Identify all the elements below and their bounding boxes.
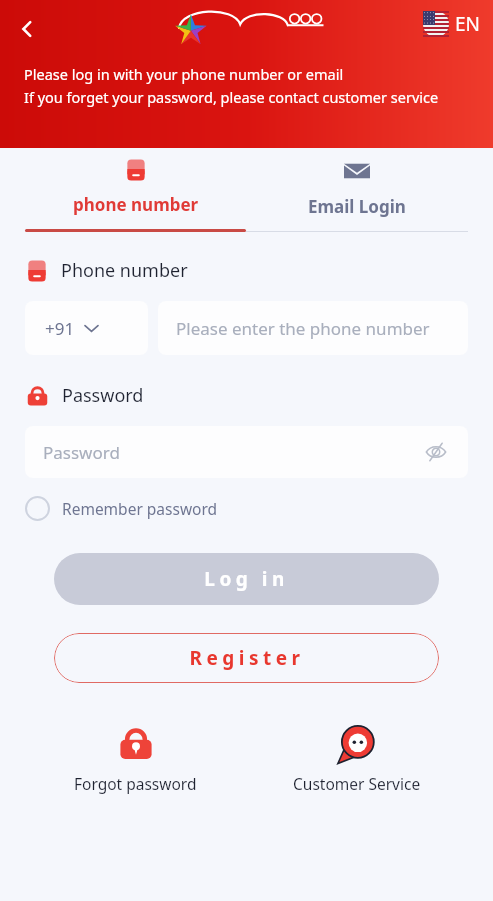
staticText: Phone number [61, 258, 188, 283]
button[interactable]: Show password [422, 438, 450, 466]
staticText: Password [43, 441, 120, 464]
button[interactable]: +91 [25, 301, 148, 355]
button[interactable]: Please enter the phone number [158, 301, 468, 355]
button[interactable]: Forgot password [25, 723, 246, 794]
staticText: Please log in with your phone number or … [24, 64, 344, 84]
staticText: Password [62, 383, 144, 408]
button[interactable]: Back [8, 10, 46, 48]
button[interactable]: Customer Service [246, 723, 468, 794]
staticText: Customer Service [293, 773, 421, 794]
staticText: Register [189, 645, 305, 671]
staticText: If you forget your password, please cont… [24, 87, 439, 107]
staticText: Log in [204, 566, 289, 592]
button[interactable]: Email Login [246, 158, 468, 229]
button[interactable]: EN [423, 11, 481, 37]
staticText: EN [455, 11, 481, 37]
staticText: phone number [73, 193, 199, 216]
staticText: Please enter the phone number [176, 317, 430, 340]
button[interactable]: Register [54, 633, 439, 683]
staticText: Remember password [62, 498, 218, 519]
button[interactable]: phone number [25, 158, 246, 227]
staticText: Forgot password [74, 773, 197, 794]
button[interactable]: Remember password [25, 496, 218, 521]
staticText: +91 [45, 317, 75, 340]
staticText: Email Login [308, 195, 406, 218]
button[interactable]: Password [25, 426, 468, 478]
button[interactable]: Log in [54, 553, 439, 605]
